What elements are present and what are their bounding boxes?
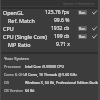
staticText: 1932 cb	[51, 25, 70, 32]
staticText: OpenGL	[3, 9, 24, 16]
button[interactable]: CPU	[0, 24, 100, 32]
button[interactable]: Run	[78, 10, 87, 15]
staticText: Run	[79, 34, 86, 39]
staticText: System Information	[63, 1, 95, 6]
button[interactable]: Cores & GHz	[0, 70, 100, 78]
staticText: 8 Cores, 16 Threads @ 5.60 GHz	[25, 72, 77, 77]
staticText: CPU (Single Core)	[3, 33, 47, 40]
button[interactable]: Processor	[0, 62, 100, 70]
staticText: 64 Bit	[25, 88, 35, 93]
staticText: Processor	[4, 64, 22, 69]
other: Benchmark complete	[92, 8, 97, 16]
button[interactable]: Ref. Match	[0, 16, 100, 24]
staticText: 199 cb	[54, 33, 70, 40]
staticText: Intel Core i9-9900K CPU	[25, 64, 64, 69]
button[interactable]: CPU (Single Core)	[0, 32, 100, 40]
other: Benchmark complete	[92, 24, 97, 32]
staticText: Run	[79, 10, 86, 15]
other: Benchmark complete	[92, 32, 97, 40]
staticText: CPU	[3, 25, 14, 32]
staticText: CB Version	[4, 88, 23, 93]
staticText: Run	[79, 26, 86, 31]
staticText: Your System	[4, 55, 29, 61]
staticText: OS	[4, 80, 9, 85]
staticText: Cores & GHz	[4, 72, 25, 77]
button[interactable]: OS	[0, 78, 100, 86]
staticText: 9.71 x	[56, 41, 70, 48]
button[interactable]: Run	[78, 26, 87, 31]
button[interactable]: Run	[78, 34, 87, 39]
staticText: Ref. Match	[8, 17, 35, 24]
staticText: MP Ratio	[8, 41, 31, 48]
staticText: 125.76 fps	[45, 9, 70, 16]
button[interactable]: CB Version	[0, 86, 100, 94]
button[interactable]: OpenGL	[0, 8, 100, 16]
button[interactable]: System Information	[0, 0, 100, 6]
staticText: 99.6 %	[54, 17, 70, 24]
button[interactable]: MP Ratio	[0, 40, 100, 48]
staticText: Windows X, 64 Bit, Professional Edition …	[25, 80, 100, 85]
